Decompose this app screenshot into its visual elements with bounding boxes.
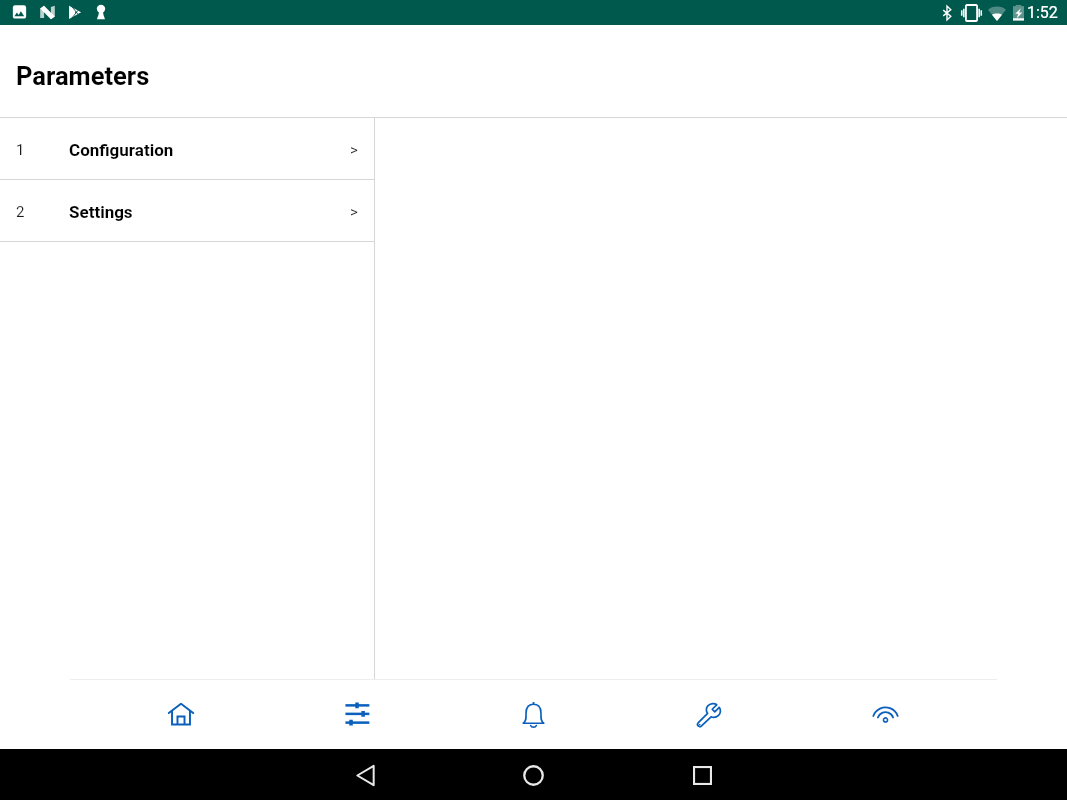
staticText: > xyxy=(350,141,358,159)
staticText: Settings xyxy=(69,202,133,222)
staticText: 1 xyxy=(16,141,25,159)
button[interactable]: Home xyxy=(93,680,269,749)
button[interactable]: Back xyxy=(281,749,449,800)
staticText: Parameters xyxy=(16,61,150,91)
staticText: Configuration xyxy=(69,140,174,160)
button[interactable]: Recent apps xyxy=(618,749,786,800)
button[interactable]: Home xyxy=(449,749,618,800)
button[interactable]: Wifi xyxy=(797,680,973,749)
button[interactable]: Tools xyxy=(621,680,797,749)
button[interactable]: Notifications xyxy=(445,680,621,749)
button[interactable]: 2 xyxy=(0,180,374,241)
staticText: > xyxy=(350,203,358,221)
staticText: 2 xyxy=(16,203,25,221)
staticText: 1:52 xyxy=(1027,3,1058,22)
button[interactable]: Tune xyxy=(269,680,445,749)
button[interactable]: 1 xyxy=(0,118,374,179)
